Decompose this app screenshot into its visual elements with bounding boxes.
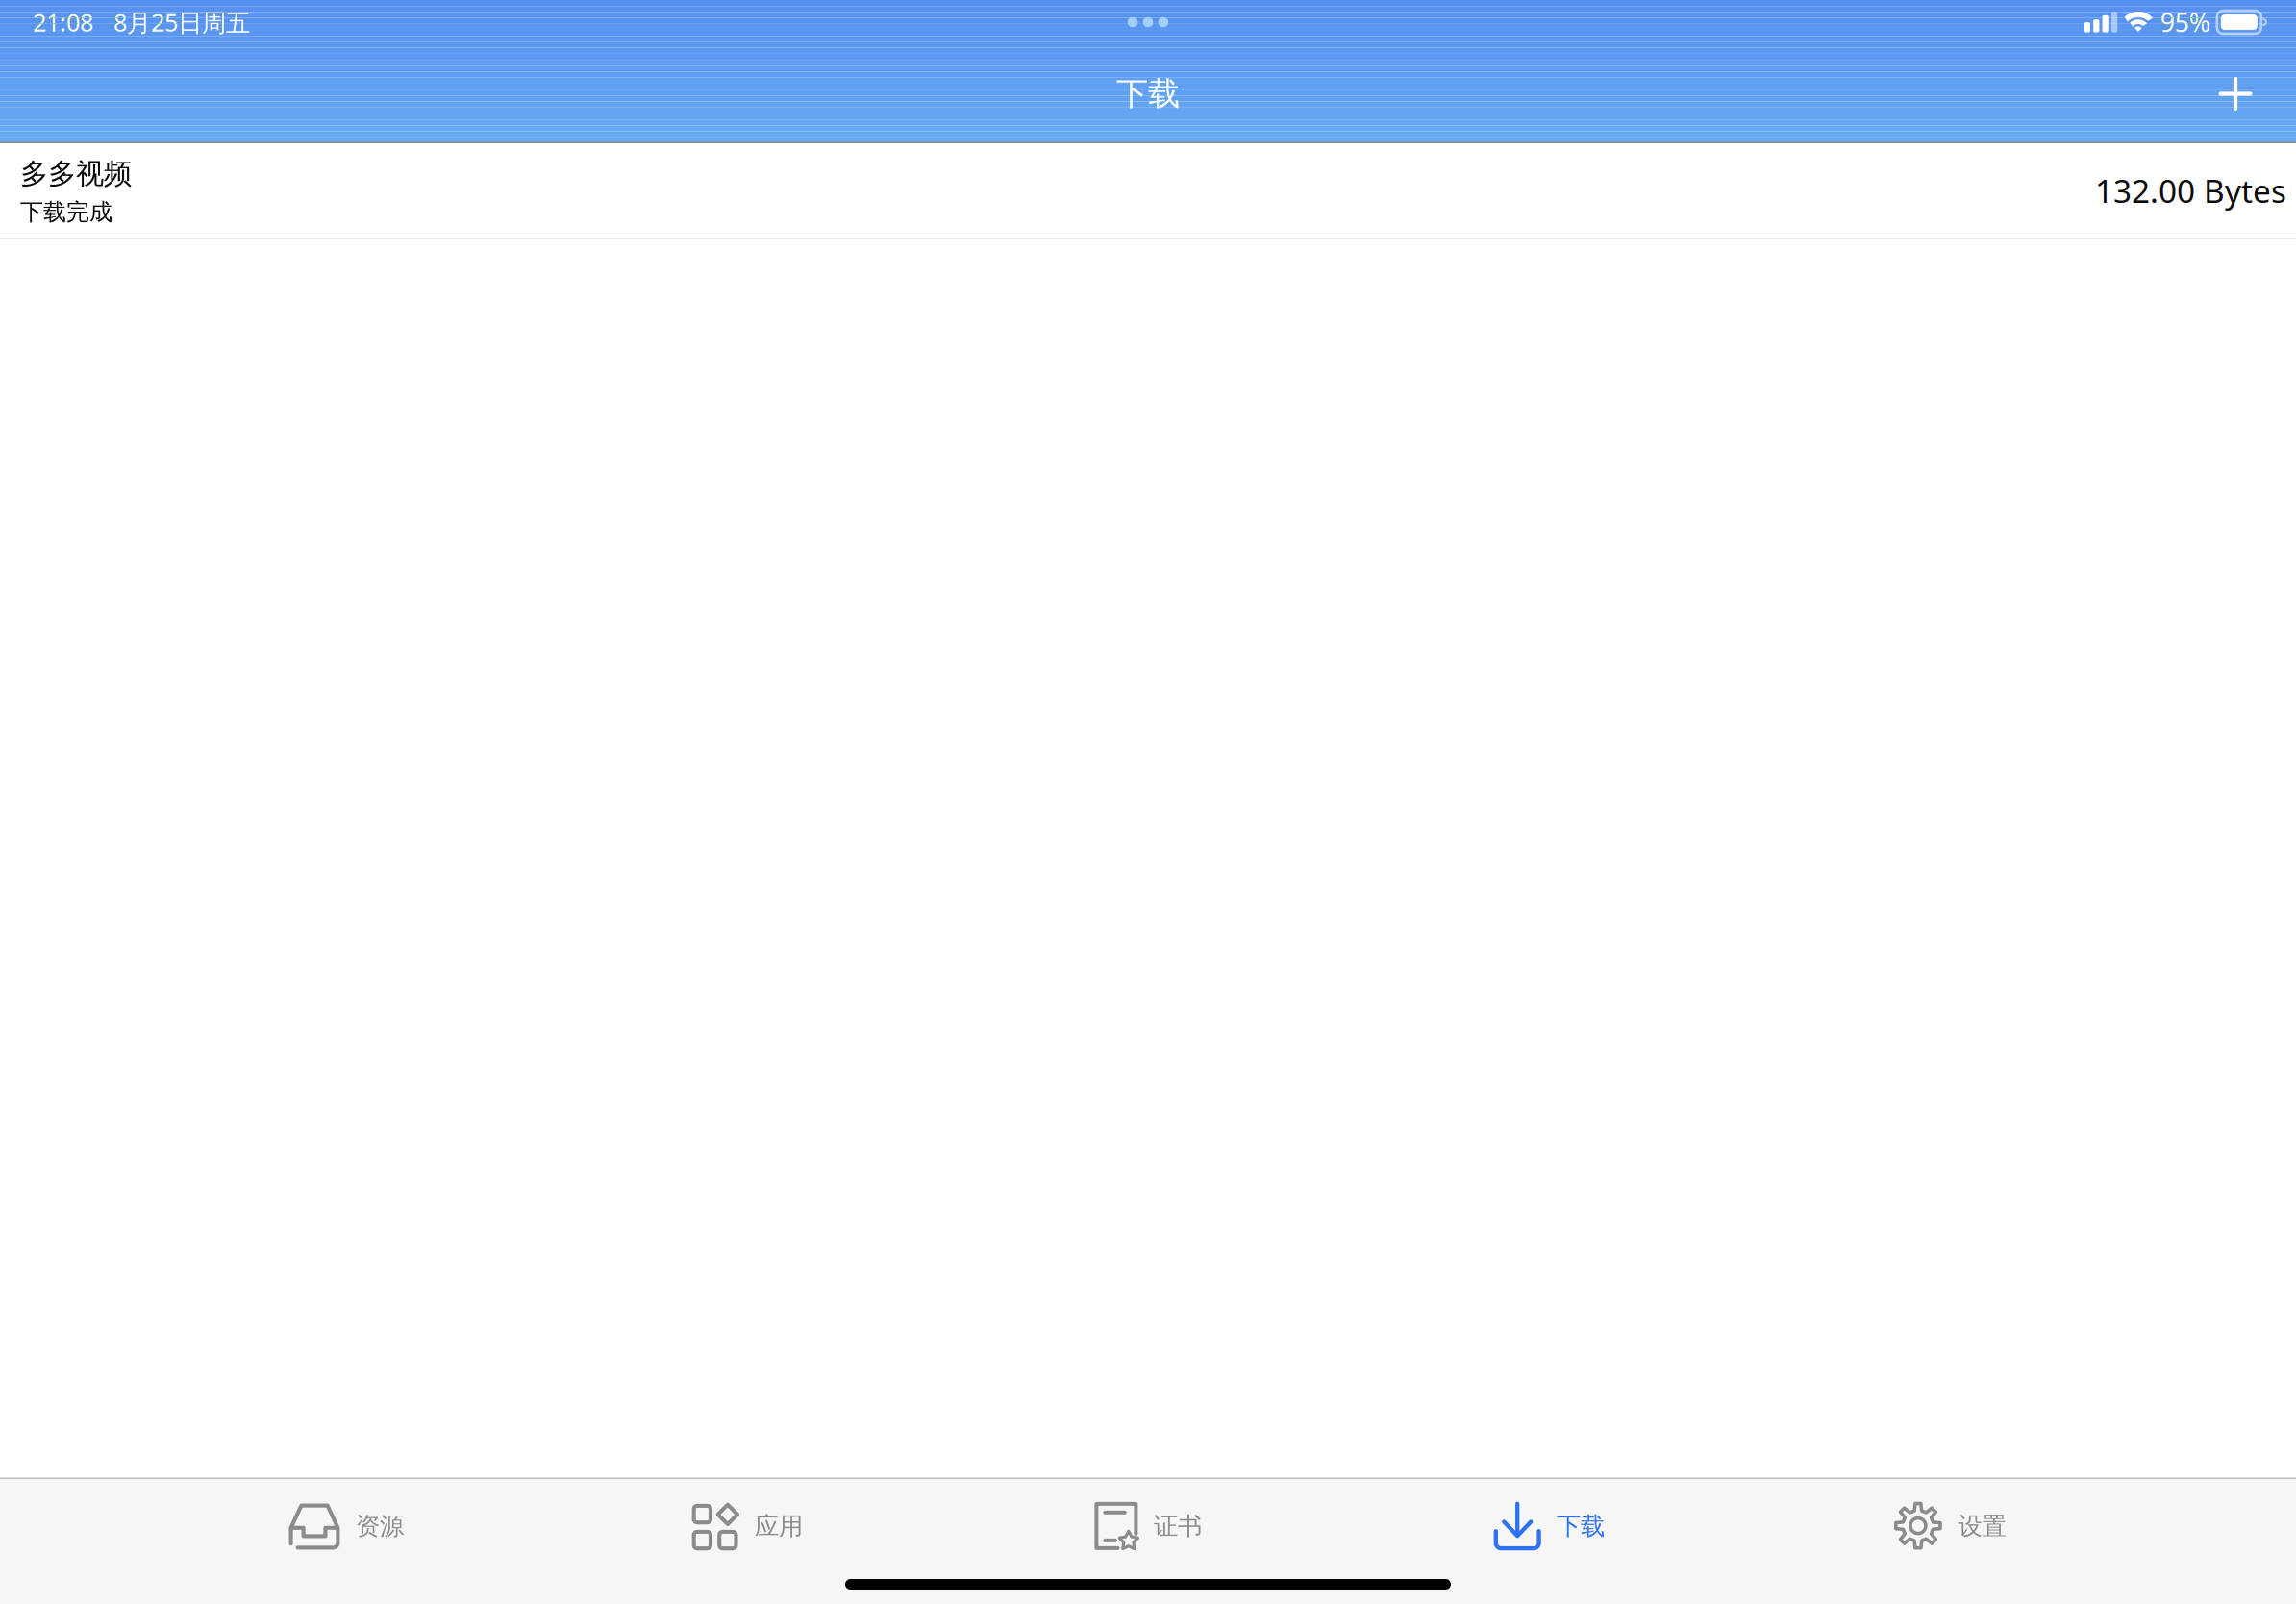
staticText: 21:08 8月25日周五 <box>33 6 250 38</box>
staticText: 95% <box>2160 5 2210 39</box>
staticText: 下载完成 <box>20 198 112 226</box>
staticText: 应用 <box>755 1511 803 1541</box>
staticText: 资源 <box>356 1511 404 1541</box>
staticText: 下载 <box>1116 74 1180 113</box>
button[interactable]: 资源 <box>146 1479 547 1573</box>
button[interactable]: 证书 <box>948 1479 1348 1573</box>
button[interactable]: 设置 <box>1749 1479 2150 1573</box>
staticText: 132.00 Bytes <box>2095 169 2286 212</box>
staticText: 设置 <box>1958 1511 2006 1541</box>
button[interactable]: 应用 <box>547 1479 948 1573</box>
button[interactable]: Add download <box>2197 55 2274 132</box>
button[interactable]: 下载 <box>1348 1479 1749 1573</box>
staticText: 多多视频 <box>20 156 132 191</box>
staticText: 下载 <box>1557 1511 1605 1541</box>
button[interactable]: 多多视频 <box>0 143 2296 238</box>
staticText: 证书 <box>1154 1511 1202 1541</box>
